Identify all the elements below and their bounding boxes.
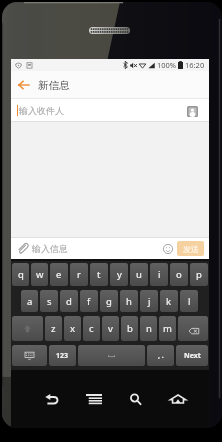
staticText: w — [36, 268, 44, 281]
staticText: s — [47, 295, 52, 308]
staticText: f — [87, 295, 91, 308]
button[interactable]: e — [50, 263, 68, 286]
staticText: 输入收件人 — [19, 105, 64, 116]
staticText: 123 — [56, 351, 69, 361]
button[interactable]: k — [160, 290, 178, 312]
button[interactable]: Choose contact — [186, 105, 198, 117]
button[interactable]: g — [100, 290, 118, 312]
button[interactable]: r — [70, 263, 88, 286]
button[interactable]: c — [83, 316, 100, 341]
staticText: d — [66, 295, 72, 308]
staticText: Next — [184, 351, 201, 361]
staticText: z — [51, 322, 56, 335]
staticText: m — [163, 322, 172, 335]
button[interactable]: x — [64, 316, 81, 341]
button[interactable] — [12, 345, 47, 366]
staticText: 16:20 — [185, 60, 205, 70]
button[interactable]: w — [31, 263, 48, 286]
button[interactable]: h — [120, 290, 138, 312]
button[interactable]: z — [45, 316, 62, 341]
staticText: g — [106, 295, 112, 308]
button[interactable]: Back — [15, 74, 32, 96]
button[interactable]: Recent apps — [84, 389, 104, 409]
button[interactable] — [178, 316, 208, 341]
button[interactable]: 123 — [49, 345, 76, 366]
button[interactable]: u — [130, 263, 148, 286]
button[interactable]: Emoji — [161, 242, 174, 255]
staticText: 输入信息 — [32, 243, 68, 254]
button[interactable]: q — [12, 263, 29, 286]
staticText: u — [136, 268, 142, 281]
staticText: e — [56, 268, 62, 281]
button[interactable]: b — [121, 316, 138, 341]
staticText: a — [27, 295, 33, 308]
staticText: x — [70, 322, 76, 335]
staticText: q — [18, 268, 24, 281]
button[interactable]: Back — [42, 389, 62, 409]
staticText: b — [127, 322, 133, 335]
staticText: t — [97, 268, 101, 281]
button[interactable]: a — [21, 290, 38, 312]
button[interactable]: p — [190, 263, 208, 286]
button[interactable]: Next — [176, 345, 208, 366]
button[interactable]: f — [80, 290, 98, 312]
staticText: v — [108, 322, 113, 335]
staticText: c — [89, 322, 94, 335]
button[interactable]: v — [102, 316, 119, 341]
staticText: p — [196, 268, 202, 281]
button[interactable]: l — [180, 290, 198, 312]
staticText: l — [188, 295, 191, 308]
button[interactable]: y — [110, 263, 128, 286]
staticText: , . — [158, 351, 164, 361]
button[interactable]: m — [159, 316, 176, 341]
staticText: i — [158, 268, 161, 281]
button[interactable]: Home — [168, 389, 188, 409]
button[interactable]: 发送 — [177, 241, 204, 256]
button[interactable]: o — [170, 263, 188, 286]
button[interactable]: d — [60, 290, 78, 312]
staticText: y — [117, 268, 122, 281]
button[interactable] — [12, 316, 43, 341]
button[interactable]: n — [140, 316, 157, 341]
button[interactable]: Search — [126, 389, 146, 409]
staticText: 100% — [157, 60, 177, 70]
button[interactable]: s — [40, 290, 58, 312]
staticText: o — [176, 268, 182, 281]
staticText: j — [148, 295, 151, 308]
button[interactable]: i — [150, 263, 168, 286]
staticText: n — [146, 322, 152, 335]
button[interactable]: , . — [147, 345, 174, 366]
button[interactable]: t — [90, 263, 108, 286]
button[interactable]: j — [140, 290, 158, 312]
staticText: 发送 — [183, 244, 199, 254]
button[interactable] — [78, 345, 145, 366]
staticText: 新信息 — [38, 79, 70, 92]
staticText: h — [126, 295, 132, 308]
button[interactable]: Attach — [16, 242, 29, 255]
staticText: r — [77, 268, 81, 281]
staticText: k — [166, 295, 172, 308]
